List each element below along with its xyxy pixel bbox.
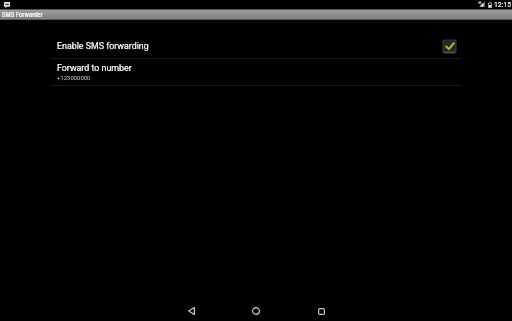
button[interactable]: Back	[180, 300, 202, 321]
button[interactable]: Forward to number	[0, 58, 512, 85]
button[interactable]: Enable SMS forwarding	[0, 33, 512, 58]
button[interactable]: Home	[245, 300, 267, 321]
button[interactable]: Recent apps	[310, 300, 332, 321]
staticText: Enable SMS forwarding	[57, 41, 149, 51]
staticText: 12:15	[494, 1, 512, 9]
staticText: Forward to number	[57, 63, 132, 73]
button[interactable]: Enable SMS forwarding checkbox	[443, 40, 456, 53]
staticText: +123000000	[57, 74, 91, 81]
button[interactable]: SMS Forwarder	[0, 9, 512, 20]
staticText: SMS Forwarder	[2, 11, 43, 19]
